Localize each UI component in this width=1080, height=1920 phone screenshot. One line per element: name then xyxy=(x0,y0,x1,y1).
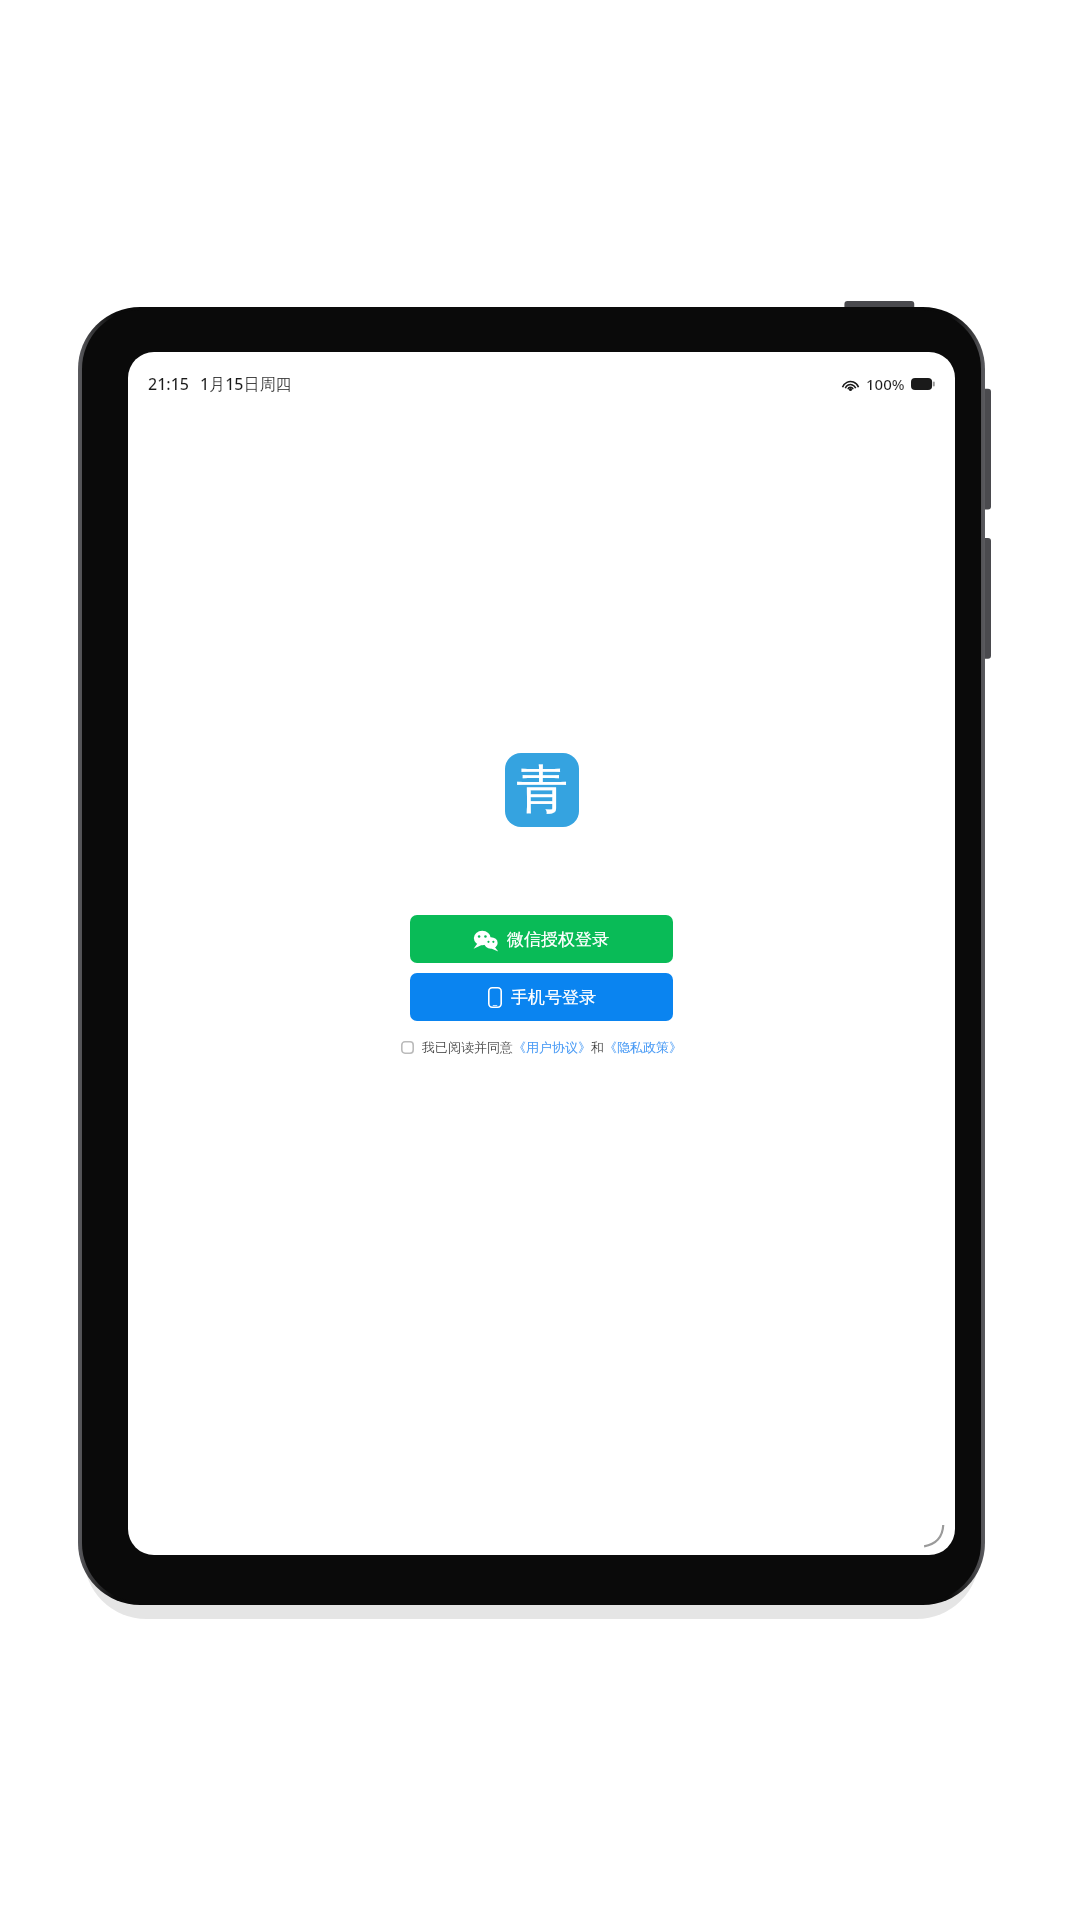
other: 同意条款复选框 xyxy=(401,1041,414,1054)
button[interactable]: 《用户协议》 xyxy=(513,1039,591,1055)
button[interactable]: 同意条款复选框 xyxy=(401,1039,682,1055)
staticText: 21:15 xyxy=(148,373,189,395)
staticText: 100% xyxy=(866,374,905,394)
staticText: 微信授权登录 xyxy=(507,929,609,950)
staticText: 手机号登录 xyxy=(511,987,596,1008)
staticText: 我已阅读并同意 xyxy=(422,1039,513,1055)
staticText: 青 xyxy=(516,757,568,823)
staticText: 和 xyxy=(591,1039,604,1055)
staticText: 1月15日周四 xyxy=(200,373,292,395)
button[interactable]: 《隐私政策》 xyxy=(604,1039,682,1055)
button[interactable]: 手机号登录 xyxy=(410,973,673,1021)
button[interactable]: 微信授权登录 xyxy=(410,915,673,963)
